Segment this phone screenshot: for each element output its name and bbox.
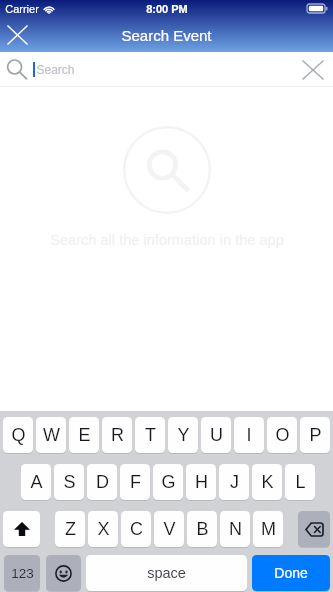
staticText: Carrier — [5, 3, 39, 15]
staticText: J — [230, 472, 239, 492]
staticText: 8:00 PM — [146, 3, 188, 15]
staticText: L — [295, 472, 306, 492]
staticText: K — [261, 472, 274, 492]
button[interactable]: L — [285, 464, 315, 501]
button[interactable]: O — [267, 417, 297, 454]
staticText: Z — [65, 519, 76, 539]
button[interactable]: U — [201, 417, 231, 454]
staticText: R — [111, 425, 124, 445]
button[interactable]: V — [154, 511, 184, 548]
staticText: V — [163, 519, 176, 539]
button[interactable]: Emoji keyboard — [46, 555, 81, 592]
staticText: G — [161, 472, 176, 492]
button[interactable]: P — [300, 417, 330, 454]
button[interactable]: space — [86, 555, 247, 592]
staticText: T — [145, 425, 156, 445]
staticText: E — [78, 425, 91, 445]
button[interactable]: Backspace — [298, 511, 330, 548]
staticText: N — [229, 519, 242, 539]
staticText: W — [43, 425, 60, 445]
staticText: I — [246, 425, 252, 445]
staticText: A — [30, 472, 43, 492]
staticText: Search Event — [121, 27, 212, 44]
staticText: D — [96, 472, 109, 492]
staticText: X — [97, 519, 110, 539]
staticText: 123 — [11, 566, 34, 581]
button[interactable]: T — [135, 417, 165, 454]
staticText: Search — [36, 63, 75, 76]
button[interactable]: H — [186, 464, 216, 501]
staticText: S — [63, 472, 76, 492]
button[interactable]: X — [88, 511, 118, 548]
staticText: Search all the information in the app — [50, 232, 284, 248]
staticText: F — [130, 472, 141, 492]
staticText: U — [210, 425, 223, 445]
button[interactable]: D — [87, 464, 117, 501]
button[interactable]: Clear search — [300, 57, 326, 83]
button[interactable]: W — [36, 417, 66, 454]
button[interactable]: C — [121, 511, 151, 548]
button[interactable]: Shift — [3, 511, 40, 548]
button[interactable]: I — [234, 417, 264, 454]
button[interactable]: 123 — [4, 555, 40, 592]
button[interactable]: Done — [252, 555, 330, 592]
staticText: B — [196, 519, 209, 539]
staticText: Y — [177, 425, 190, 445]
staticText: Q — [11, 425, 26, 445]
button[interactable]: S — [54, 464, 84, 501]
button[interactable]: A — [21, 464, 51, 501]
button[interactable]: Z — [55, 511, 85, 548]
button[interactable]: K — [252, 464, 282, 501]
button[interactable]: B — [187, 511, 217, 548]
button[interactable]: M — [253, 511, 283, 548]
button[interactable]: F — [120, 464, 150, 501]
button[interactable]: Q — [3, 417, 33, 454]
staticText: Done — [274, 565, 308, 581]
button[interactable]: Y — [168, 417, 198, 454]
staticText: C — [130, 519, 143, 539]
button[interactable]: N — [220, 511, 250, 548]
staticText: O — [275, 425, 290, 445]
staticText: H — [195, 472, 208, 492]
staticText: space — [147, 565, 186, 581]
button[interactable]: R — [102, 417, 132, 454]
button[interactable]: E — [69, 417, 99, 454]
button[interactable]: Close — [0, 18, 34, 52]
button[interactable]: G — [153, 464, 183, 501]
staticText: P — [309, 425, 322, 445]
button[interactable]: J — [219, 464, 249, 501]
staticText: M — [261, 519, 276, 539]
